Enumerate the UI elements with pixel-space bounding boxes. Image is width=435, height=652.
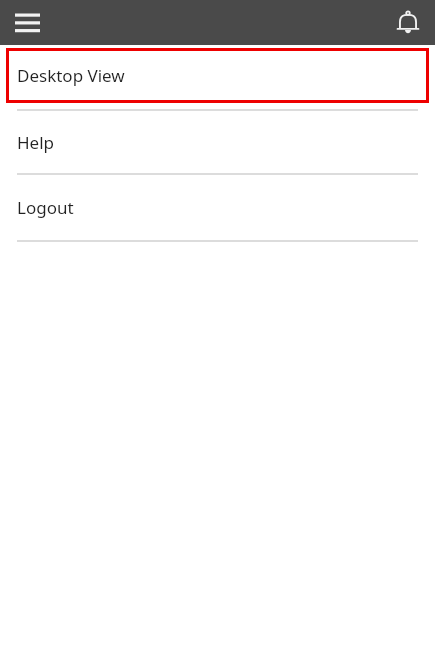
- button[interactable]: Notifications: [390, 5, 426, 41]
- staticText: Desktop View: [17, 64, 125, 87]
- staticText: Logout: [17, 196, 74, 219]
- staticText: Help: [17, 131, 55, 154]
- button[interactable]: Logout: [0, 175, 435, 240]
- button[interactable]: Desktop View: [6, 48, 429, 103]
- button[interactable]: Help: [0, 111, 435, 173]
- button[interactable]: Open navigation menu: [9, 5, 45, 41]
